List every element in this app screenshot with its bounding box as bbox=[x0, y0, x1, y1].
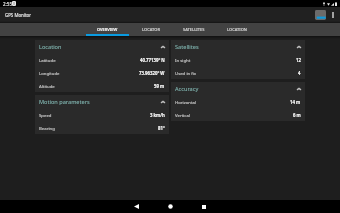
staticText: 12 bbox=[296, 57, 301, 63]
staticText: Speed bbox=[39, 112, 150, 118]
button[interactable]: Back bbox=[119, 200, 153, 213]
button[interactable]: Altitude bbox=[39, 79, 165, 92]
staticText: Latitude bbox=[39, 57, 140, 63]
staticText: Vertical bbox=[175, 112, 293, 118]
staticText: Horizontal bbox=[175, 99, 290, 105]
button[interactable]: LOCATOR bbox=[129, 23, 172, 36]
button[interactable]: LOCATION bbox=[215, 23, 258, 36]
staticText: Accuracy bbox=[175, 85, 297, 93]
button[interactable]: Recents bbox=[187, 200, 221, 213]
button[interactable]: SATELLITES bbox=[172, 23, 215, 36]
button[interactable]: GPS status bbox=[313, 7, 327, 23]
staticText: 6 m bbox=[293, 112, 301, 118]
button[interactable]: Accuracy bbox=[175, 82, 301, 95]
staticText: Longitude bbox=[39, 70, 139, 76]
button[interactable]: Bearing bbox=[39, 121, 165, 134]
staticText: Bearing bbox=[39, 125, 158, 131]
staticText: Altitude bbox=[39, 83, 154, 89]
button[interactable]: Horizontal bbox=[175, 95, 301, 108]
button[interactable]: Latitude bbox=[39, 53, 165, 66]
staticText: 40.77139° N bbox=[140, 57, 165, 63]
staticText: 81° bbox=[158, 125, 165, 131]
staticText: 2:55 bbox=[3, 1, 13, 7]
staticText: 14 m bbox=[290, 99, 301, 105]
staticText: 4 bbox=[298, 70, 301, 76]
staticText: OVERVIEW bbox=[97, 27, 118, 32]
staticText: 59 m bbox=[154, 83, 165, 89]
button[interactable]: Location bbox=[39, 40, 165, 53]
staticText: Location bbox=[39, 43, 161, 51]
button[interactable]: OVERVIEW bbox=[86, 23, 129, 36]
staticText: In sight bbox=[175, 57, 296, 63]
staticText: 3 km/h bbox=[150, 112, 165, 118]
staticText: 73.96320° W bbox=[139, 70, 165, 76]
staticText: LOCATOR bbox=[142, 27, 160, 32]
button[interactable]: Motion parameters bbox=[39, 95, 165, 108]
button[interactable]: More options bbox=[329, 7, 337, 23]
button[interactable]: Satellites bbox=[175, 40, 301, 53]
button[interactable]: Used in fix bbox=[175, 66, 301, 79]
staticText: LOCATION bbox=[227, 27, 247, 32]
staticText: SATELLITES bbox=[183, 27, 205, 32]
button[interactable]: Vertical bbox=[175, 108, 301, 121]
button[interactable]: Speed bbox=[39, 108, 165, 121]
button[interactable]: In sight bbox=[175, 53, 301, 66]
staticText: Satellites bbox=[175, 43, 297, 51]
staticText: Motion parameters bbox=[39, 98, 161, 106]
staticText: Used in fix bbox=[175, 70, 298, 76]
button[interactable]: Home bbox=[153, 200, 187, 213]
staticText: GPS Monitor bbox=[5, 12, 31, 18]
button[interactable]: Longitude bbox=[39, 66, 165, 79]
